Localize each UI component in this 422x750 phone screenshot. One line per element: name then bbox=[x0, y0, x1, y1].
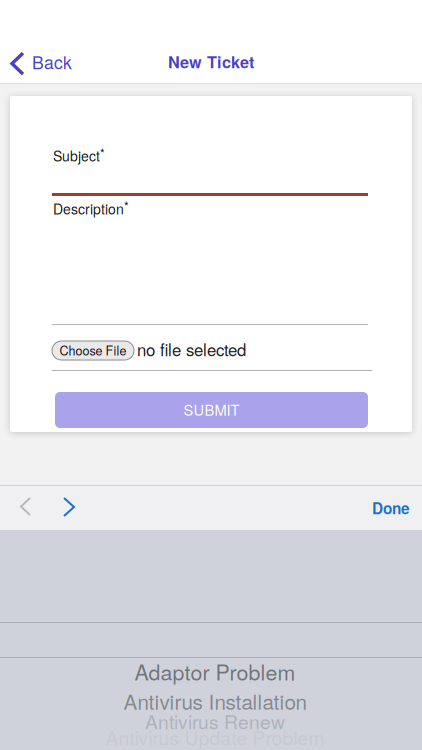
button[interactable]: Next field bbox=[53, 485, 85, 529]
staticText: New Ticket bbox=[168, 50, 254, 73]
staticText: Choose File bbox=[59, 341, 126, 359]
staticText: Adaptor Problem bbox=[134, 656, 295, 686]
staticText: Done bbox=[372, 497, 410, 519]
staticText: Antivirus Renew bbox=[145, 707, 285, 735]
button[interactable]: Previous field bbox=[10, 485, 41, 528]
button[interactable]: Back bbox=[2, 45, 87, 82]
staticText: Back bbox=[32, 49, 72, 74]
staticText: Description* bbox=[53, 197, 129, 218]
staticText: Subject* bbox=[53, 144, 105, 165]
button[interactable]: Choose File bbox=[52, 341, 134, 360]
button[interactable]: Done bbox=[360, 483, 422, 533]
button[interactable]: SUBMIT bbox=[55, 392, 368, 428]
staticText: no file selected bbox=[137, 337, 246, 361]
staticText: Antivirus Update Problem bbox=[105, 723, 324, 750]
staticText: SUBMIT bbox=[183, 399, 239, 420]
staticText: Antivirus Installation bbox=[123, 686, 306, 716]
